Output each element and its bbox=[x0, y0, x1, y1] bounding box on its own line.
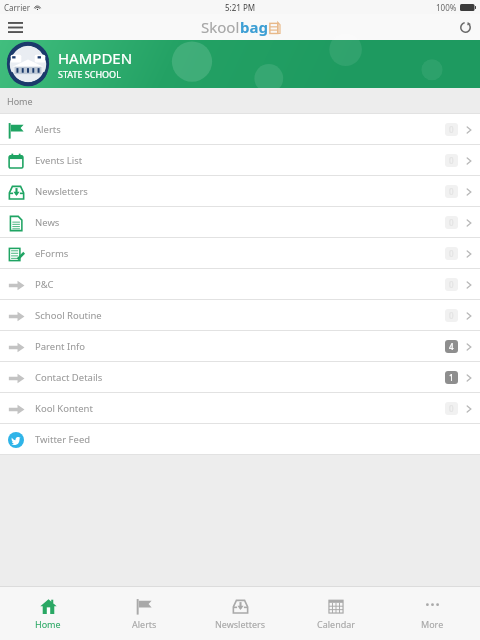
button[interactable]: Home bbox=[0, 587, 96, 640]
staticText: Home bbox=[35, 618, 61, 630]
button[interactable]: Newsletters bbox=[192, 587, 288, 640]
staticText: School Routine bbox=[35, 309, 102, 322]
staticText: 0 bbox=[449, 124, 454, 135]
button[interactable]: Kool Kontent bbox=[0, 393, 480, 424]
button[interactable]: eForms bbox=[0, 238, 480, 269]
staticText: STATE SCHOOL bbox=[58, 68, 121, 80]
staticText: Carrier bbox=[4, 2, 31, 13]
staticText: Alerts bbox=[132, 618, 157, 630]
staticText: News bbox=[35, 216, 60, 229]
staticText: Newsletters bbox=[215, 618, 266, 630]
button[interactable]: Parent Info bbox=[0, 331, 480, 362]
staticText: Alerts bbox=[35, 123, 61, 136]
staticText: bag bbox=[240, 17, 268, 37]
staticText: eForms bbox=[35, 247, 69, 260]
staticText: Skool bbox=[201, 17, 240, 37]
staticText: 0 bbox=[449, 217, 454, 228]
staticText: 0 bbox=[449, 403, 454, 414]
button[interactable]: Twitter Feed bbox=[0, 424, 480, 455]
staticText: 0 bbox=[449, 248, 454, 259]
button[interactable]: Refresh bbox=[450, 14, 480, 40]
staticText: Parent Info bbox=[35, 340, 86, 353]
button[interactable]: Newsletters bbox=[0, 176, 480, 207]
staticText: 5:21 PM bbox=[225, 2, 256, 13]
staticText: 100% bbox=[436, 2, 457, 13]
button[interactable]: Alerts bbox=[0, 114, 480, 145]
staticText: Calendar bbox=[317, 618, 355, 630]
button[interactable]: Contact Details bbox=[0, 362, 480, 393]
staticText: P&C bbox=[35, 278, 54, 291]
staticText: Twitter Feed bbox=[35, 433, 91, 446]
staticText: More bbox=[421, 618, 444, 630]
staticText: Events List bbox=[35, 154, 83, 167]
staticText: Kool Kontent bbox=[35, 402, 93, 415]
staticText: Contact Details bbox=[35, 371, 103, 384]
staticText: Home bbox=[7, 95, 33, 107]
staticText: HAMPDEN bbox=[58, 48, 133, 68]
button[interactable]: News bbox=[0, 207, 480, 238]
button[interactable]: More bbox=[384, 587, 480, 640]
button[interactable]: Events List bbox=[0, 145, 480, 176]
button[interactable]: Alerts bbox=[96, 587, 192, 640]
staticText: 0 bbox=[449, 310, 454, 321]
staticText: 0 bbox=[449, 155, 454, 166]
button[interactable]: P&C bbox=[0, 269, 480, 300]
staticText: 4 bbox=[449, 341, 454, 352]
button[interactable]: School Routine bbox=[0, 300, 480, 331]
button[interactable]: Menu bbox=[0, 14, 30, 40]
staticText: 1 bbox=[449, 372, 454, 383]
staticText: Newsletters bbox=[35, 185, 88, 198]
staticText: 0 bbox=[449, 279, 454, 290]
button[interactable]: Calendar bbox=[288, 587, 384, 640]
staticText: 0 bbox=[449, 186, 454, 197]
